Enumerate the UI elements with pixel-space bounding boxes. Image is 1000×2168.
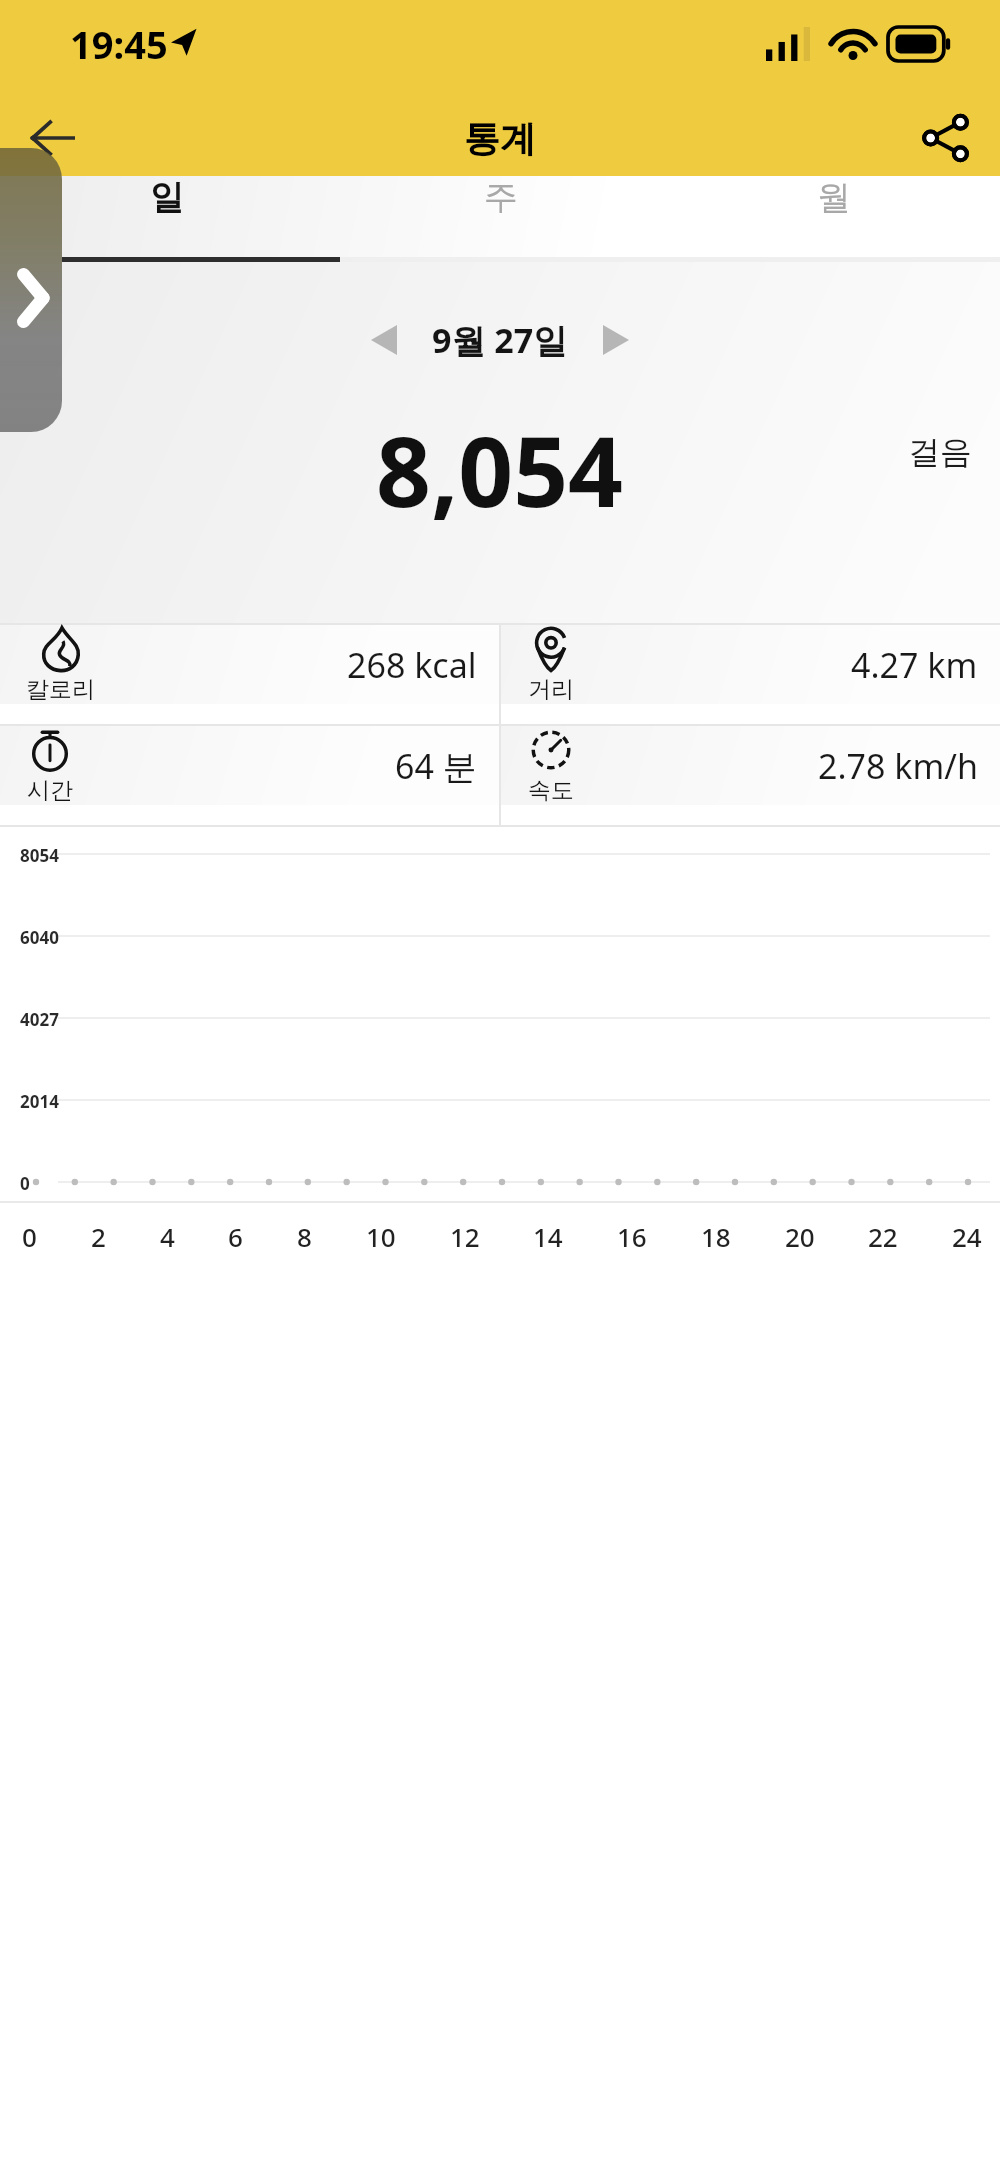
staticText: 19:45 xyxy=(70,18,168,70)
staticText: 268 kcal xyxy=(347,642,477,688)
staticText: 9월 27일 xyxy=(432,317,568,363)
staticText: 22 xyxy=(868,1219,898,1254)
staticText: 속도 xyxy=(528,776,574,805)
staticText: 64 분 xyxy=(395,743,477,789)
staticText: 시간 xyxy=(27,776,73,805)
staticText: 월 xyxy=(817,176,851,219)
button[interactable]: Share xyxy=(908,100,984,176)
staticText: 6040 xyxy=(20,926,59,949)
button[interactable]: 주 xyxy=(334,176,667,219)
button[interactable]: 일 xyxy=(0,176,334,219)
staticText: 2.78 km/h xyxy=(818,743,978,789)
staticText: 4 xyxy=(160,1219,175,1254)
staticText: 2014 xyxy=(20,1090,59,1113)
staticText: 8,054 xyxy=(376,404,624,535)
button[interactable]: Previous day xyxy=(354,310,414,370)
staticText: 18 xyxy=(701,1219,731,1254)
button[interactable]: 속도 xyxy=(501,726,1000,805)
staticText: 24 xyxy=(952,1219,982,1254)
staticText: 4.27 km xyxy=(851,642,978,688)
staticText: 12 xyxy=(450,1219,480,1254)
staticText: 통계 xyxy=(464,116,536,161)
staticText: 8 xyxy=(297,1219,312,1254)
staticText: 거리 xyxy=(528,675,574,704)
staticText: 4027 xyxy=(20,1008,59,1031)
staticText: 0 xyxy=(20,1172,30,1195)
button[interactable]: Next day xyxy=(586,310,646,370)
staticText: 20 xyxy=(785,1219,815,1254)
staticText: 주 xyxy=(484,176,518,219)
button[interactable]: Open side panel xyxy=(0,148,62,432)
staticText: 10 xyxy=(366,1219,396,1254)
staticText: 0 xyxy=(22,1219,37,1254)
button[interactable]: 월 xyxy=(667,176,1000,219)
staticText: 2 xyxy=(91,1219,106,1254)
staticText: 칼로리 xyxy=(26,675,95,704)
staticText: 걸음 xyxy=(908,432,972,472)
button[interactable]: 칼로리 xyxy=(0,625,499,704)
staticText: 16 xyxy=(617,1219,647,1254)
button[interactable]: Back xyxy=(14,100,90,176)
button[interactable]: 시간 xyxy=(0,726,499,805)
staticText: 6 xyxy=(228,1219,243,1254)
staticText: 일 xyxy=(150,176,184,219)
button[interactable]: 거리 xyxy=(501,625,1000,704)
staticText: 8054 xyxy=(20,844,59,867)
staticText: 14 xyxy=(533,1219,563,1254)
